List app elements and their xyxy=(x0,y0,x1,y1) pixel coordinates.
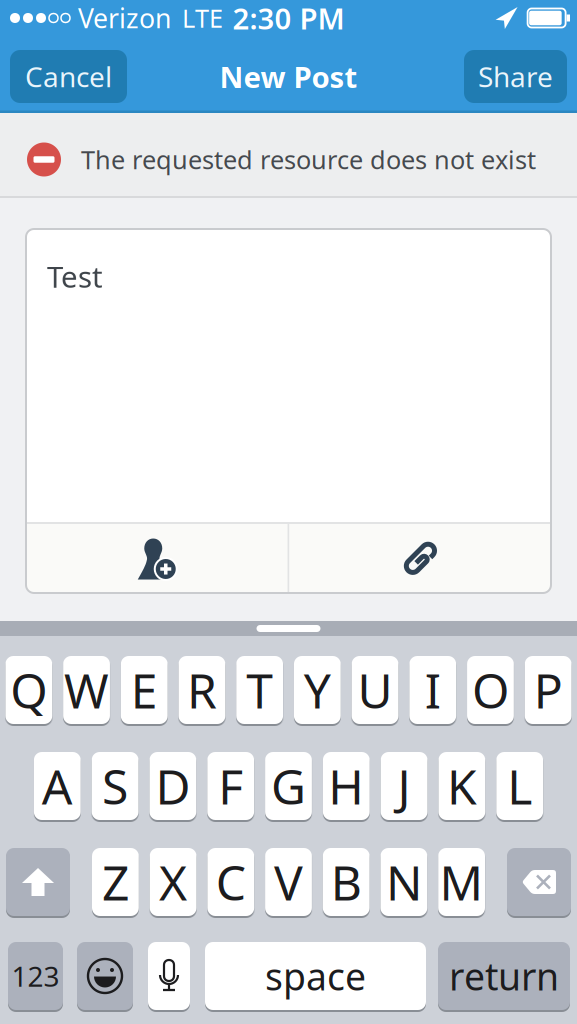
staticText: R xyxy=(187,658,217,722)
button[interactable]: Attach file xyxy=(289,524,551,593)
staticText: 123 xyxy=(11,957,59,995)
staticText: J xyxy=(398,754,411,818)
staticText: Y xyxy=(304,658,331,722)
staticText: Share xyxy=(478,58,553,95)
staticText: W xyxy=(64,658,109,722)
staticText: return xyxy=(449,951,559,1001)
staticText: T xyxy=(246,658,273,722)
staticText: New Post xyxy=(219,57,357,96)
button[interactable]: Dictate xyxy=(148,942,190,1010)
button[interactable]: M xyxy=(438,848,485,916)
staticText: O xyxy=(472,658,509,722)
button[interactable]: return xyxy=(438,942,570,1010)
button[interactable]: L xyxy=(496,752,543,820)
staticText: H xyxy=(328,754,364,818)
button[interactable]: P xyxy=(525,656,571,724)
button[interactable]: N xyxy=(380,848,427,916)
staticText: S xyxy=(102,754,128,818)
button[interactable]: X xyxy=(150,848,196,916)
staticText: Test xyxy=(47,257,103,296)
staticText: E xyxy=(131,658,158,722)
button[interactable]: T xyxy=(236,656,283,724)
button[interactable]: S xyxy=(92,752,138,820)
button[interactable]: U xyxy=(352,656,398,724)
button[interactable]: Shift xyxy=(6,848,70,916)
staticText: LTE xyxy=(182,1,223,35)
staticText: Z xyxy=(102,850,129,914)
staticText: 2:30 PM xyxy=(232,0,344,37)
staticText: I xyxy=(425,658,441,722)
button[interactable]: Q xyxy=(5,656,52,724)
button[interactable]: J xyxy=(381,752,427,820)
staticText: L xyxy=(507,754,532,818)
staticText: Cancel xyxy=(25,58,112,95)
button[interactable]: Emoji xyxy=(77,942,133,1010)
staticText: C xyxy=(216,850,246,914)
button[interactable]: A xyxy=(34,752,81,820)
button[interactable]: O xyxy=(467,656,514,724)
button[interactable]: Share xyxy=(464,50,567,103)
staticText: P xyxy=(534,658,563,722)
staticText: K xyxy=(447,754,477,818)
button[interactable]: Cancel xyxy=(10,50,127,103)
button[interactable]: Z xyxy=(92,848,139,916)
button[interactable]: space xyxy=(205,942,426,1010)
staticText: G xyxy=(271,754,306,818)
staticText: M xyxy=(440,850,484,914)
button[interactable]: R xyxy=(178,656,225,724)
button[interactable]: K xyxy=(438,752,485,820)
button[interactable]: W xyxy=(63,656,110,724)
staticText: D xyxy=(155,754,190,818)
staticText: N xyxy=(386,850,422,914)
staticText: space xyxy=(265,951,366,1001)
button[interactable]: D xyxy=(149,752,196,820)
staticText: U xyxy=(357,658,392,722)
staticText: B xyxy=(331,850,362,914)
staticText: Q xyxy=(10,658,47,722)
button[interactable]: C xyxy=(207,848,254,916)
staticText: The requested resource does not exist xyxy=(81,143,536,176)
staticText: Verizon xyxy=(78,0,171,36)
staticText: V xyxy=(274,850,303,914)
button[interactable]: B xyxy=(323,848,370,916)
button[interactable]: G xyxy=(265,752,312,820)
staticText: X xyxy=(159,850,187,914)
button[interactable]: Delete xyxy=(507,848,571,916)
staticText: F xyxy=(218,754,243,818)
button[interactable]: H xyxy=(323,752,370,820)
button[interactable]: Tag people xyxy=(26,524,287,593)
button[interactable]: 123 xyxy=(8,942,63,1010)
button[interactable]: F xyxy=(207,752,254,820)
button[interactable]: I xyxy=(409,656,456,724)
button[interactable]: Y xyxy=(294,656,341,724)
staticText: A xyxy=(42,754,73,818)
button[interactable]: E xyxy=(121,656,168,724)
button[interactable]: V xyxy=(265,848,312,916)
